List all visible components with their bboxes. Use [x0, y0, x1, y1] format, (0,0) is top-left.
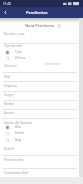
staticText: Asunto — [4, 111, 15, 115]
staticText: Alta — [15, 125, 21, 129]
staticText: Media — [15, 131, 24, 135]
staticText: Cargo — [4, 93, 13, 97]
staticText: Detalle — [4, 147, 15, 151]
staticText: Proximo paso — [4, 158, 24, 162]
staticText: Oficina — [15, 56, 26, 60]
staticText: Nombre y ape — [4, 32, 25, 36]
staticText: Seleccionar — [45, 62, 61, 66]
staticText: Comentario final — [4, 171, 29, 175]
staticText: Telefono — [4, 64, 17, 68]
staticText: Nota Pendiente — [25, 23, 55, 28]
button[interactable]: Baja — [5, 137, 22, 143]
staticText: Estado del llamado — [4, 121, 32, 125]
staticText: Baja — [15, 138, 22, 142]
button[interactable]: Oficina — [5, 55, 26, 61]
staticText: Mail — [4, 75, 11, 79]
staticText: Motivo — [4, 102, 15, 106]
button[interactable]: Media — [5, 130, 24, 136]
staticText: Empresa — [4, 84, 17, 88]
staticText: Pendientes — [26, 10, 48, 15]
staticText: Tipo de nota — [4, 44, 23, 48]
button[interactable]: Casa — [5, 49, 22, 55]
staticText: Casa — [15, 50, 22, 54]
button[interactable]: Alta — [5, 124, 21, 130]
button[interactable]: Back — [0, 7, 11, 18]
staticText: 11:40 — [3, 2, 11, 6]
